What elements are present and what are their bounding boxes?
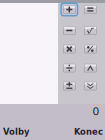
- staticText: Konec: [74, 126, 103, 137]
- button[interactable]: Minus: [63, 26, 75, 35]
- button[interactable]: Change sign: [63, 82, 75, 90]
- button[interactable]: More: [84, 82, 96, 90]
- button[interactable]: Konec: [65, 123, 104, 140]
- button[interactable]: Equals: [84, 5, 96, 14]
- button[interactable]: Plus: [63, 5, 75, 14]
- staticText: 0: [92, 105, 99, 118]
- button[interactable]: Percent: [84, 45, 96, 53]
- staticText: Volby: [3, 126, 29, 137]
- button[interactable]: Power: [84, 64, 96, 72]
- button[interactable]: Square root: [84, 26, 96, 35]
- button[interactable]: Volby: [1, 123, 41, 140]
- button[interactable]: Multiply: [63, 45, 75, 53]
- button[interactable]: Divide: [63, 64, 75, 72]
